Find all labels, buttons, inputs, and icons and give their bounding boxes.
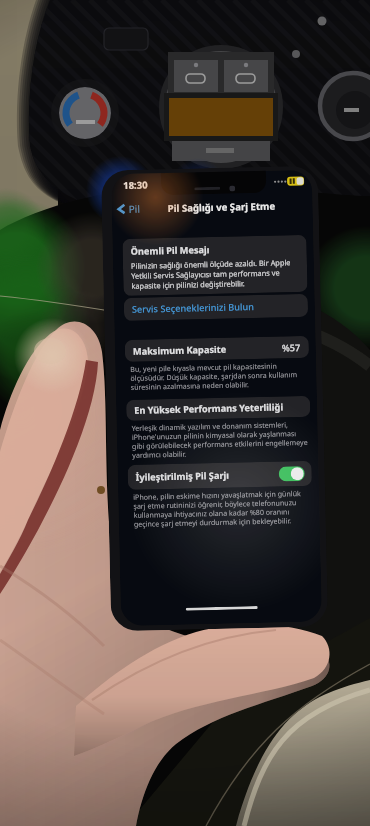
staticText: Pilinizin sağlığı önemli ölçüde azaldı. …: [131, 257, 299, 291]
button[interactable]: Maksimum Kapasite: [125, 336, 309, 362]
button[interactable]: Servis Seçeneklerinizi Bulun: [124, 294, 308, 321]
staticText: En Yüksek Performans Yeterliliği: [134, 400, 283, 417]
staticText: %57: [282, 341, 301, 354]
staticText: Pil Sağlığı ve Şarj Etme: [167, 200, 276, 215]
staticText: İyileştirilmiş Pil Şarjı: [136, 469, 230, 484]
staticText: Maksimum Kapasite: [133, 343, 227, 358]
staticText: iPhone, pilin eskime hızını yavaşlatmak …: [133, 488, 310, 529]
staticText: Bu, yeni pile kıyasla mevcut pil kapasit…: [130, 360, 307, 392]
button[interactable]: Pil: [111, 197, 147, 220]
staticText: Servis Seçeneklerinizi Bulun: [132, 300, 255, 316]
staticText: 18:30: [123, 178, 148, 192]
staticText: Önemli Pil Mesajı: [130, 243, 210, 258]
button[interactable]: İyileştirilmiş Pil Şarjı switch: [279, 466, 305, 482]
button[interactable]: En Yüksek Performans Yeterliliği: [126, 396, 310, 421]
staticText: Pil: [128, 202, 141, 216]
staticText: Yerleşik dinamik yazılım ve donanım sist…: [131, 419, 308, 460]
